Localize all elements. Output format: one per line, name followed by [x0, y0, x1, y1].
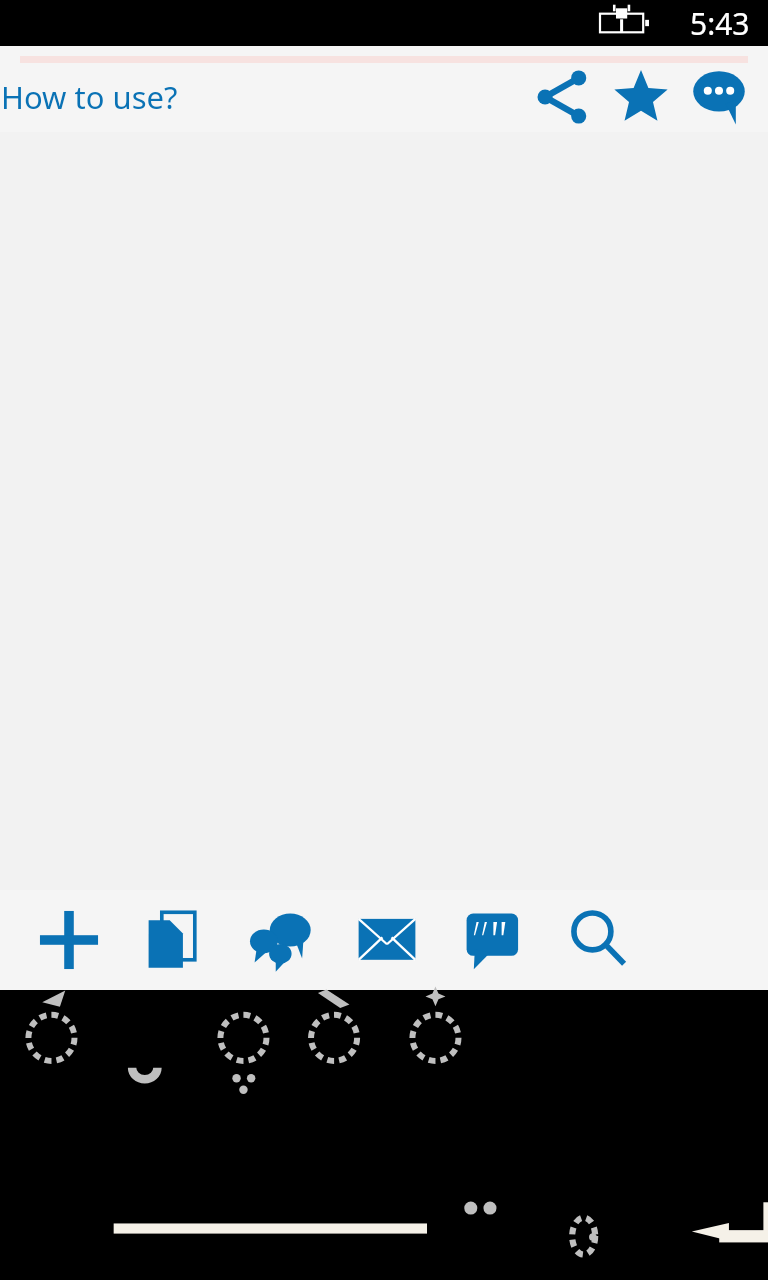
button[interactable]: Comments [680, 58, 758, 136]
button[interactable]: Search [546, 890, 652, 990]
button[interactable]: How to use? [0, 76, 178, 118]
staticText: 5:43 [690, 3, 750, 44]
button[interactable]: Mail [334, 890, 440, 990]
button[interactable]: Favorite [602, 58, 680, 136]
button[interactable]: Quote [440, 890, 546, 990]
button[interactable]: Share [524, 58, 602, 136]
button[interactable]: Copy [122, 890, 228, 990]
button[interactable]: Chat [228, 890, 334, 990]
button[interactable]: Add [16, 890, 122, 990]
